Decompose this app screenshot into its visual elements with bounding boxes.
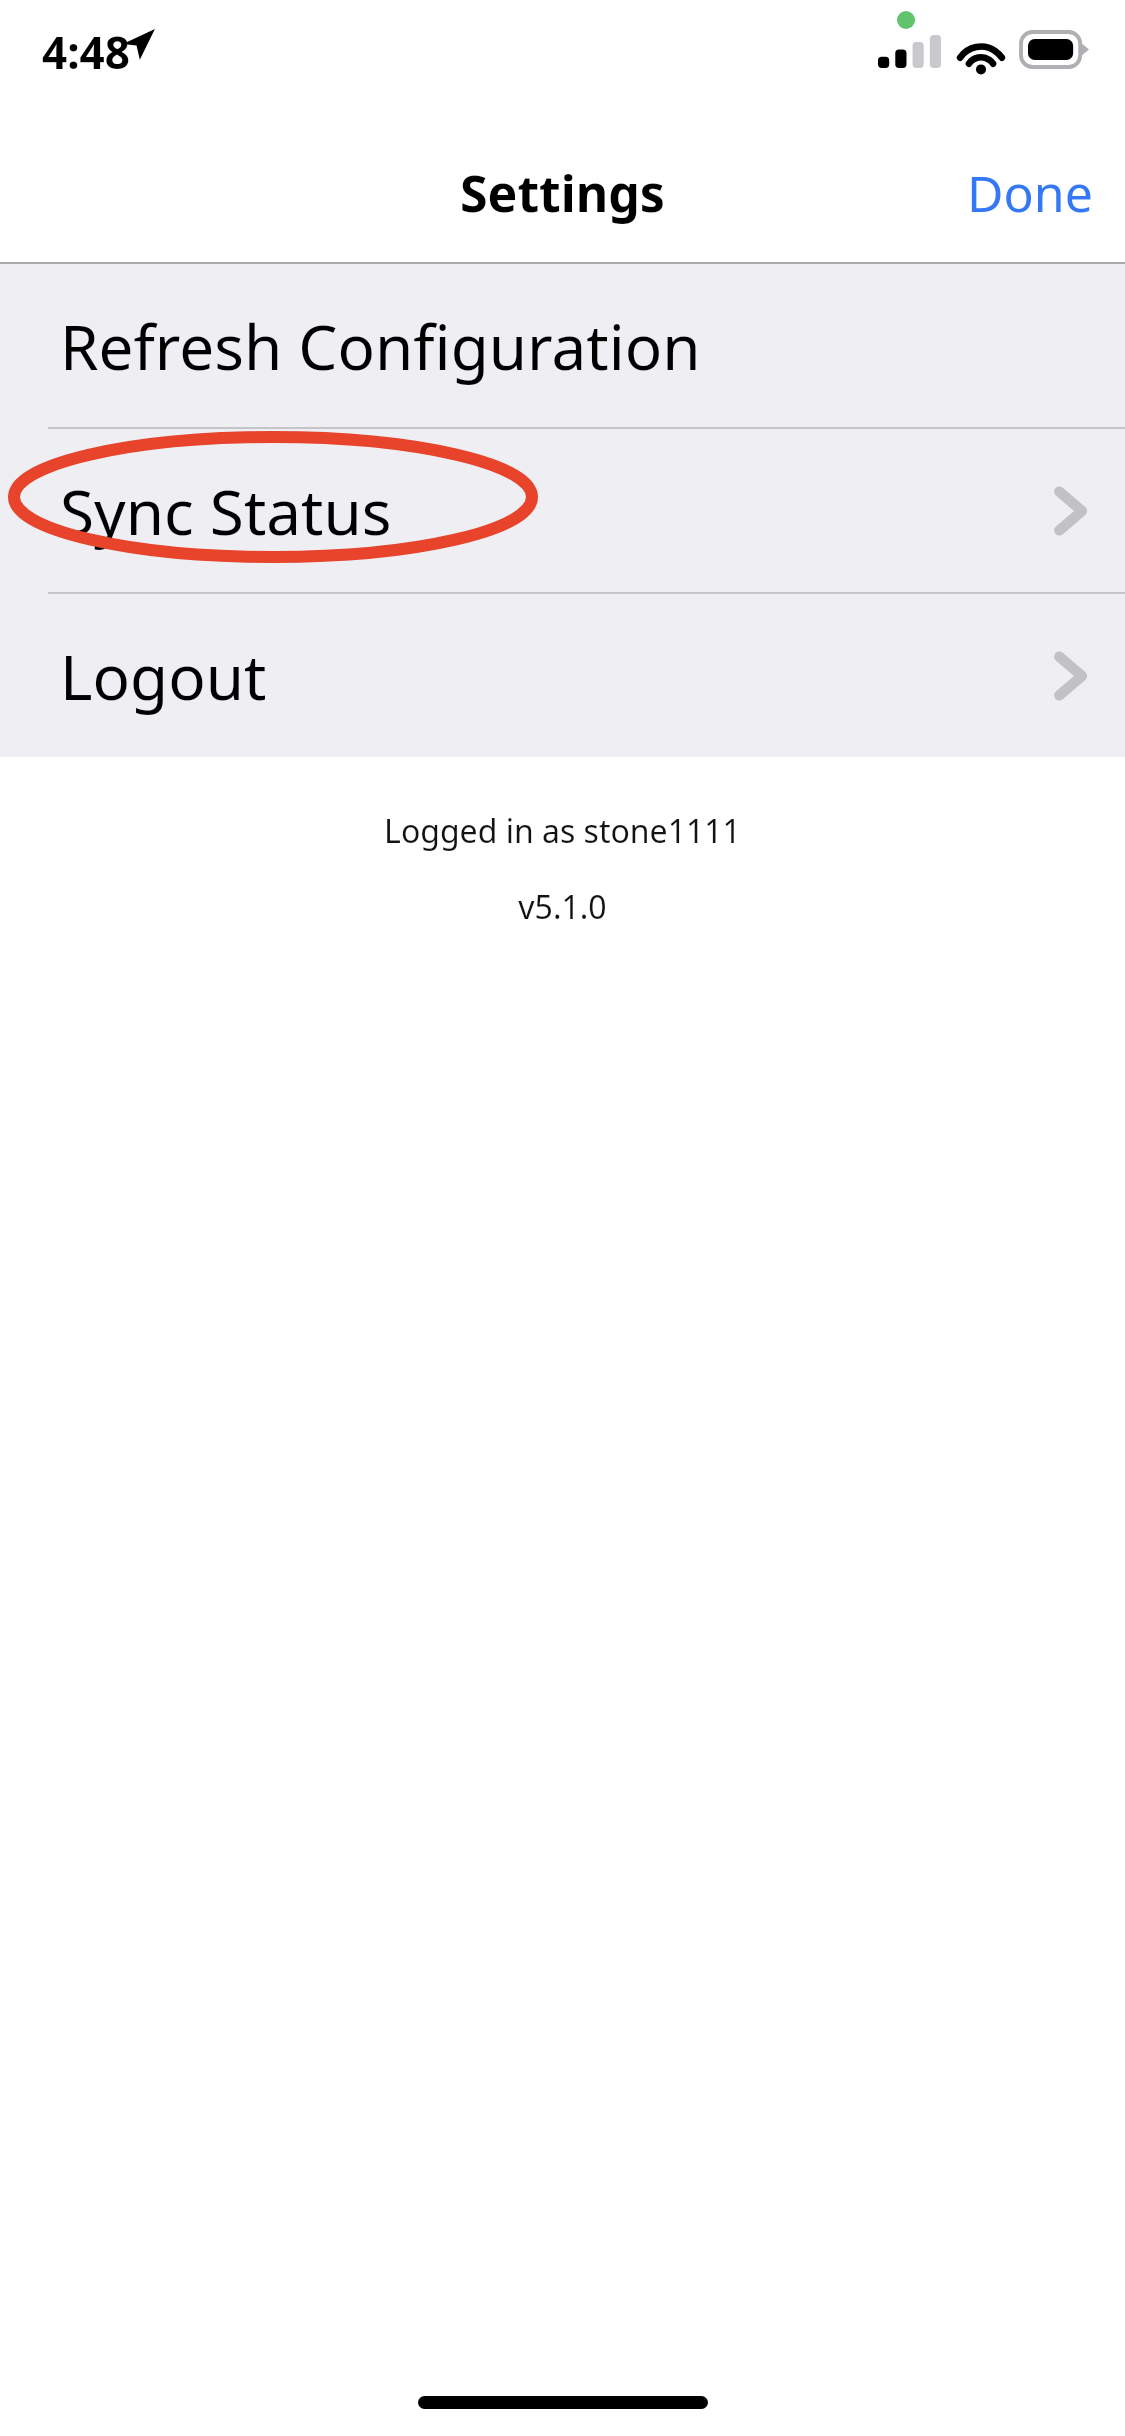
- button[interactable]: Logout: [0, 594, 1125, 757]
- button[interactable]: Refresh Configuration: [0, 264, 1125, 427]
- button[interactable]: Sync Status: [0, 429, 1125, 592]
- button[interactable]: Done: [935, 143, 1125, 243]
- other: Open Logout: [1055, 651, 1085, 701]
- staticText: Logout: [60, 634, 267, 718]
- staticText: Sync Status: [60, 469, 392, 553]
- staticText: Refresh Configuration: [60, 304, 701, 388]
- staticText: 4:48: [42, 22, 130, 82]
- other: Open Sync Status: [1055, 486, 1085, 536]
- staticText: Settings: [460, 159, 665, 227]
- staticText: Logged in as stone1111: [0, 809, 1125, 853]
- staticText: Done: [967, 159, 1093, 227]
- staticText: v5.1.0: [0, 885, 1125, 929]
